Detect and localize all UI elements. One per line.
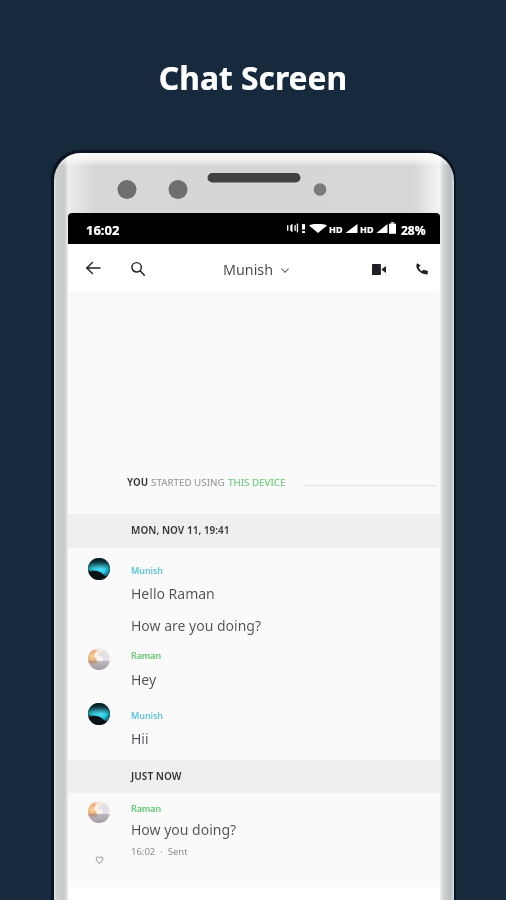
staticText: MON, NOV 11, 19:41 (131, 523, 230, 537)
staticText: 16:02 · Sent (131, 845, 188, 858)
button[interactable]: Like (93, 853, 105, 865)
button[interactable]: Munish (223, 258, 289, 280)
staticText: Munish (131, 709, 163, 721)
staticText: Raman (131, 649, 162, 661)
staticText: HD (329, 223, 343, 235)
staticText: Raman (131, 802, 162, 814)
staticText: Hello Raman (131, 584, 215, 603)
staticText: 28% (401, 222, 426, 238)
staticText: Munish (131, 564, 163, 576)
staticText: Chat Screen (0, 56, 506, 99)
button[interactable]: Search (117, 248, 159, 290)
staticText: How are you doing? (131, 616, 262, 635)
staticText: How you doing? (131, 820, 237, 839)
staticText: YOU (127, 476, 151, 486)
button[interactable]: Back (72, 247, 114, 289)
staticText: 16:02 (86, 221, 120, 239)
button[interactable]: Video call (358, 248, 400, 290)
staticText: THIS DEVICE (228, 476, 286, 486)
staticText: JUST NOW (131, 769, 182, 783)
button[interactable]: Call (400, 248, 442, 290)
staticText: STARTED USING (151, 476, 228, 486)
staticText: Hii (131, 729, 149, 748)
staticText: HD (360, 223, 374, 235)
staticText: Munish (223, 260, 274, 279)
staticText: Hey (131, 670, 157, 689)
